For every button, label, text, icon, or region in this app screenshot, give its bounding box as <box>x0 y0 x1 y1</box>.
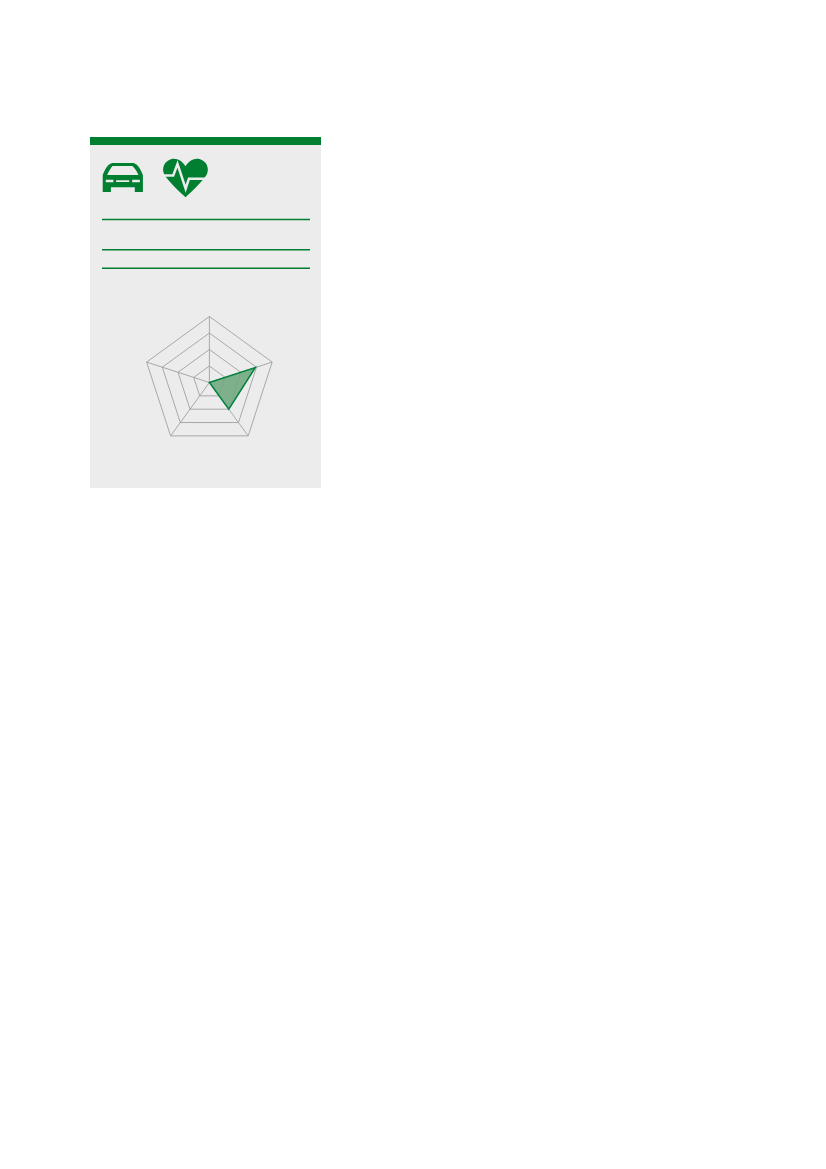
button[interactable]: Detail row <box>102 261 310 276</box>
button[interactable]: Detail row <box>102 242 310 257</box>
button[interactable]: Vehicle <box>96 156 149 198</box>
button[interactable]: Vehicle <box>90 137 321 488</box>
button[interactable]: Score breakdown chart <box>139 312 280 453</box>
button[interactable]: Heart rate <box>156 152 214 204</box>
button[interactable]: Detail row <box>102 212 310 227</box>
